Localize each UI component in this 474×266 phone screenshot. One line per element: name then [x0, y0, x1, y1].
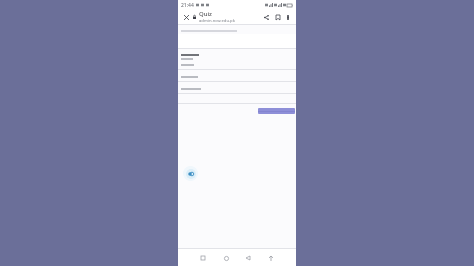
- button[interactable]: Back: [242, 252, 254, 264]
- button[interactable]: Next: [258, 108, 295, 114]
- button[interactable]: Share: [261, 12, 272, 23]
- button[interactable]: Home: [220, 252, 232, 264]
- button[interactable]: Bookmark: [272, 12, 283, 23]
- button[interactable]: More options: [283, 12, 293, 22]
- staticText: admin.ncw.edu.pk: [199, 18, 235, 24]
- button[interactable]: Close: [181, 12, 191, 22]
- button[interactable]: Keyboard: [265, 252, 277, 264]
- staticText: 21:44: [181, 2, 194, 9]
- button[interactable]: Recent apps: [197, 252, 209, 264]
- staticText: Quiz: [199, 10, 212, 18]
- button[interactable]: Translate: [183, 166, 198, 181]
